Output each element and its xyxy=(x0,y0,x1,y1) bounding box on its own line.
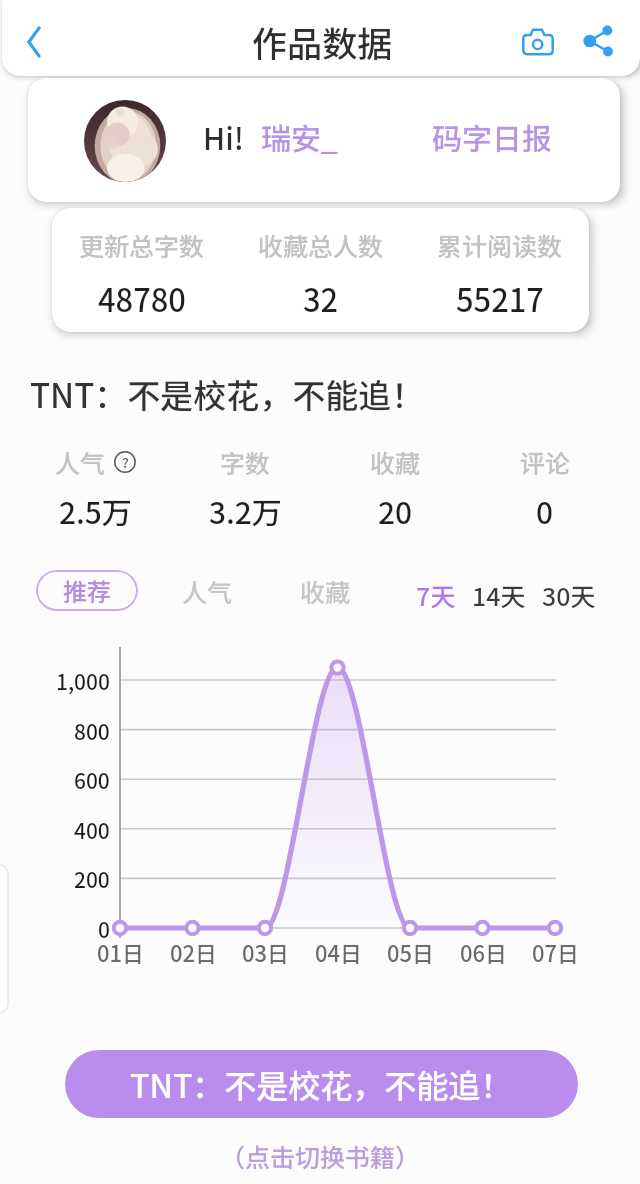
button[interactable]: Share xyxy=(573,15,625,67)
staticText: 0 xyxy=(536,489,554,532)
staticText: 收藏总人数 xyxy=(258,227,384,263)
staticText: 48780 xyxy=(98,276,186,321)
button[interactable]: （点击切换书籍） xyxy=(212,1136,429,1176)
staticText: 人气 xyxy=(55,444,106,480)
staticText: 04日 xyxy=(315,936,362,964)
staticText: 2.5万 xyxy=(59,489,132,532)
staticText: 400 xyxy=(74,815,110,843)
button[interactable]: TNT：不是校花，不能追！ xyxy=(65,1050,578,1118)
staticText: 收藏 xyxy=(300,573,351,609)
staticText: 200 xyxy=(74,864,110,892)
staticText: 1,000 xyxy=(56,666,110,694)
staticText: 7天 xyxy=(416,577,456,613)
button[interactable]: 人气 xyxy=(171,572,243,610)
staticText: 3.2万 xyxy=(209,489,282,532)
staticText: Hi! xyxy=(203,115,244,158)
staticText: 800 xyxy=(74,716,110,744)
staticText: 55217 xyxy=(456,276,544,321)
button[interactable]: 7天 xyxy=(407,576,465,614)
staticText: 瑞安_ xyxy=(261,115,338,158)
staticText: 更新总字数 xyxy=(79,227,205,263)
staticText: 600 xyxy=(74,765,110,793)
staticText: 人气 xyxy=(182,573,233,609)
button[interactable]: 30天 xyxy=(532,576,606,614)
button[interactable]: Camera xyxy=(512,16,564,68)
staticText: 码字日报 xyxy=(432,115,552,158)
staticText: 32 xyxy=(303,276,339,321)
button[interactable]: 推荐 xyxy=(36,570,138,611)
staticText: 05日 xyxy=(387,936,434,964)
staticText: 07日 xyxy=(532,936,579,964)
staticText: 06日 xyxy=(460,936,507,964)
staticText: 累计阅读数 xyxy=(437,227,563,263)
staticText: 30天 xyxy=(542,577,596,613)
staticText: 20 xyxy=(378,489,413,532)
staticText: 02日 xyxy=(170,936,217,964)
staticText: 评论 xyxy=(520,444,571,480)
button[interactable]: Hi! xyxy=(28,78,620,202)
staticText: 0 xyxy=(98,914,110,942)
staticText: 推荐 xyxy=(63,573,111,608)
staticText: 14天 xyxy=(472,577,526,613)
staticText: 03日 xyxy=(242,936,289,964)
staticText: 作品数据 xyxy=(252,16,393,67)
staticText: ? xyxy=(122,452,129,472)
staticText: （点击切换书籍） xyxy=(220,1138,421,1174)
staticText: 01日 xyxy=(97,936,144,964)
staticText: 字数 xyxy=(220,444,271,480)
button[interactable]: Back xyxy=(10,18,58,66)
button[interactable]: 收藏 xyxy=(289,572,361,610)
staticText: TNT：不是校花，不能追！ xyxy=(30,370,425,418)
staticText: 收藏 xyxy=(370,444,421,480)
button[interactable]: 14天 xyxy=(462,576,536,614)
staticText: TNT：不是校花，不能追！ xyxy=(130,1061,513,1107)
